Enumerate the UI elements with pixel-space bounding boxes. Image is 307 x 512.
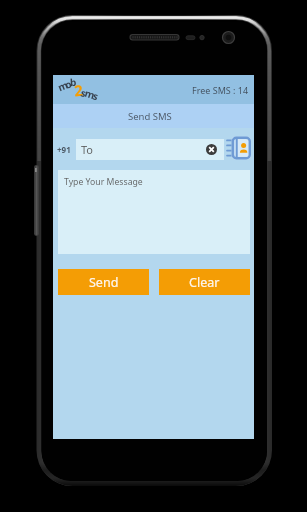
staticText: To bbox=[81, 142, 94, 157]
staticText: b bbox=[69, 75, 77, 89]
staticText: o bbox=[64, 76, 73, 91]
staticText: +91 bbox=[57, 144, 71, 155]
staticText: m bbox=[83, 86, 97, 102]
staticText: m bbox=[56, 78, 70, 94]
button[interactable]: Clear recipient bbox=[206, 144, 217, 155]
staticText: Send bbox=[89, 274, 119, 291]
staticText: s bbox=[91, 88, 101, 104]
button[interactable]: Clear bbox=[159, 269, 250, 295]
staticText: Send SMS bbox=[128, 110, 172, 123]
staticText: s bbox=[79, 85, 89, 100]
staticText: Clear bbox=[189, 274, 220, 291]
staticText: Type Your Message bbox=[64, 176, 143, 188]
button[interactable]: Type Your Message bbox=[58, 170, 250, 254]
button[interactable]: To bbox=[76, 139, 224, 160]
staticText: Free SMS : 14 bbox=[192, 84, 249, 96]
staticText: 2 bbox=[73, 80, 84, 100]
button[interactable]: Send bbox=[58, 269, 149, 295]
button[interactable]: Pick contact bbox=[227, 136, 251, 160]
